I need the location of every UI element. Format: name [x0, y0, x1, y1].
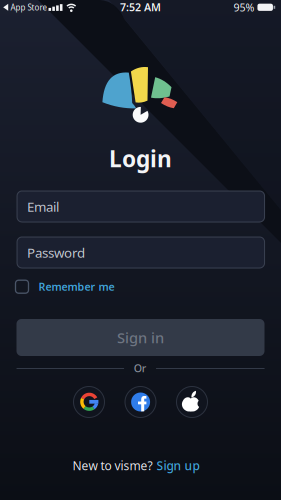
staticText: New to visme? [72, 457, 152, 473]
staticText: App Store [10, 2, 47, 13]
staticText: Sign up [156, 457, 199, 473]
staticText: Sign in [117, 328, 164, 347]
staticText: Login [109, 143, 172, 173]
staticText: Email [27, 198, 59, 215]
staticText: Remember me [39, 280, 115, 294]
staticText: Password [27, 244, 85, 261]
staticText: Or [134, 361, 147, 375]
staticText: 95% [233, 0, 254, 14]
staticText: 7:52 AM [120, 0, 161, 14]
